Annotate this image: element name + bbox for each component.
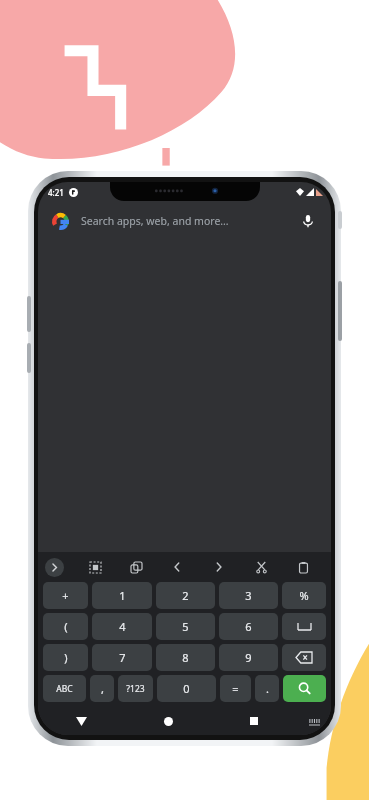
staticText: , [101, 681, 104, 696]
staticText: 8 [182, 650, 189, 665]
button[interactable]: = [220, 675, 251, 702]
button[interactable]: 8 [156, 644, 215, 671]
button[interactable]: Home [125, 707, 211, 735]
button[interactable]: Select all [85, 557, 105, 577]
staticText: 6 [245, 619, 252, 634]
button[interactable]: 0 [157, 675, 216, 702]
button[interactable]: . [255, 675, 279, 702]
button[interactable]: Move cursor left [167, 557, 187, 577]
button[interactable]: 5 [156, 613, 215, 640]
staticText: ( [64, 619, 68, 634]
staticText: 0 [183, 681, 190, 696]
button[interactable]: ?123 [118, 675, 153, 702]
staticText: 7 [119, 650, 126, 665]
button[interactable]: 6 [219, 613, 278, 640]
button[interactable]: Search apps, web, and more… [38, 202, 331, 240]
staticText: ABC [56, 683, 73, 695]
staticText: Search apps, web, and more… [81, 214, 229, 228]
button[interactable]: 4 [92, 613, 152, 640]
staticText: 4:21 [48, 187, 64, 198]
staticText: = [232, 681, 239, 696]
button[interactable]: Space [282, 613, 326, 640]
button[interactable]: Cut [251, 557, 271, 577]
button[interactable]: ABC [43, 675, 86, 702]
button[interactable]: Move cursor right [209, 557, 229, 577]
staticText: . [266, 681, 269, 696]
button[interactable]: ( [43, 613, 88, 640]
staticText: % [299, 588, 309, 603]
button[interactable]: , [90, 675, 114, 702]
button[interactable]: ) [43, 644, 88, 671]
button[interactable]: % [282, 582, 326, 609]
button[interactable]: 3 [219, 582, 278, 609]
button[interactable]: 1 [92, 582, 152, 609]
button[interactable]: Back [38, 707, 125, 735]
staticText: 9 [245, 650, 252, 665]
button[interactable]: 7 [92, 644, 152, 671]
staticText: 2 [182, 588, 189, 603]
button[interactable]: Paste [293, 557, 313, 577]
staticText: + [62, 588, 69, 603]
button[interactable]: Expand toolbar [45, 558, 64, 577]
button[interactable]: Voice search [299, 212, 317, 230]
button[interactable]: Recent apps [211, 707, 297, 735]
staticText: ?123 [126, 683, 145, 695]
button[interactable]: + [43, 582, 88, 609]
staticText: 4 [119, 619, 126, 634]
button[interactable]: Copy [126, 557, 146, 577]
button[interactable]: Switch keyboard [297, 707, 331, 735]
button[interactable]: 2 [156, 582, 215, 609]
button[interactable]: Backspace [282, 644, 326, 671]
button[interactable]: 9 [219, 644, 278, 671]
staticText: 5 [182, 619, 189, 634]
staticText: 1 [119, 588, 126, 603]
button[interactable]: Search [283, 675, 326, 702]
staticText: 3 [245, 588, 252, 603]
staticText: ) [64, 650, 68, 665]
